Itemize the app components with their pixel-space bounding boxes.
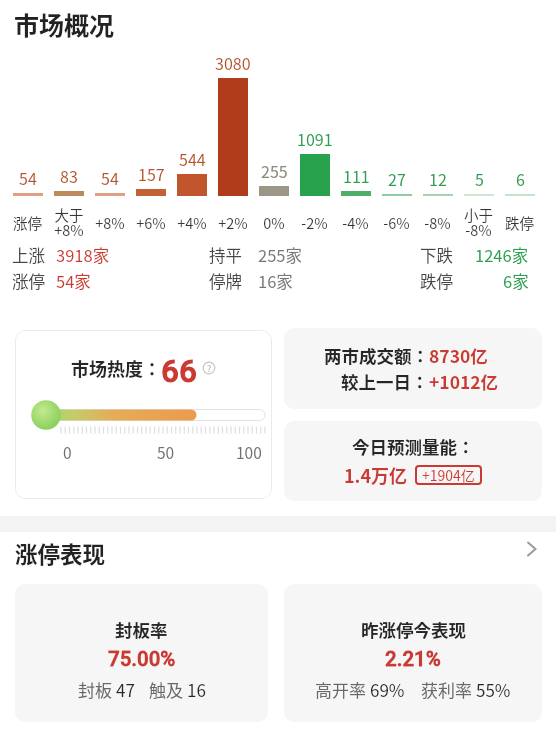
staticText: ? xyxy=(207,362,212,375)
staticText: 小于 -8% xyxy=(464,204,493,240)
staticText: 50 xyxy=(157,441,175,463)
staticText: 16家 xyxy=(258,269,293,293)
staticText: 55% xyxy=(476,677,511,702)
staticText: 下跌 xyxy=(420,243,453,267)
button[interactable]: 今日预测量能： xyxy=(284,421,542,501)
staticText: 昨涨停今表现 xyxy=(361,617,466,642)
staticText: 高开率 xyxy=(315,677,370,702)
staticText: 停牌 xyxy=(209,269,242,293)
staticText: 16 xyxy=(187,677,206,702)
staticText: +8% xyxy=(95,212,125,233)
button[interactable]: 两市成交额： xyxy=(284,328,542,409)
staticText: 跌停 xyxy=(505,212,534,233)
staticText: +4% xyxy=(177,212,207,233)
staticText: +2% xyxy=(218,212,248,233)
button[interactable]: 昨涨停今表现 xyxy=(284,584,542,722)
staticText: 6 xyxy=(516,167,525,190)
staticText: 1.4万亿 xyxy=(344,462,408,488)
staticText: 12 xyxy=(429,167,447,190)
staticText: 大于 +8% xyxy=(54,204,84,240)
staticText: 较上一日： xyxy=(341,369,429,394)
staticText: 0 xyxy=(63,441,72,463)
staticText: 3080 xyxy=(215,51,251,74)
staticText: 8730亿 xyxy=(429,343,488,368)
staticText: 市场热度： xyxy=(71,355,161,381)
staticText: 封板率 xyxy=(115,617,168,642)
staticText: 54 xyxy=(19,166,37,189)
staticText: 100 xyxy=(236,441,262,463)
staticText: -2% xyxy=(301,212,328,233)
staticText: 获利率 xyxy=(421,677,476,702)
staticText: -4% xyxy=(342,212,369,233)
staticText: +1904亿 xyxy=(422,465,475,485)
staticText: 47 xyxy=(116,677,135,702)
staticText: 5 xyxy=(475,167,484,190)
staticText: 1091 xyxy=(297,127,333,150)
staticText: 今日预测量能： xyxy=(352,434,475,459)
staticText: 544 xyxy=(179,147,206,170)
staticText: 255 xyxy=(261,159,288,182)
staticText: 跌停 xyxy=(420,269,453,293)
staticText: 75.00% xyxy=(108,647,176,671)
staticText: 两市成交额： xyxy=(324,343,429,368)
staticText: 255家 xyxy=(258,243,302,267)
staticText: 54家 xyxy=(56,269,91,293)
staticText: 69% xyxy=(370,677,405,702)
staticText: 54 xyxy=(101,166,119,189)
staticText: 111 xyxy=(343,164,370,187)
staticText: 市场概况 xyxy=(14,6,115,42)
staticText: 上涨 xyxy=(12,243,45,267)
button[interactable]: 市场热度： xyxy=(15,330,272,499)
staticText: 157 xyxy=(138,162,165,185)
staticText: +6% xyxy=(136,212,166,233)
staticText: 0% xyxy=(263,212,285,233)
staticText: 涨停 xyxy=(12,269,45,293)
button[interactable]: 涨停表现 xyxy=(0,535,556,571)
staticText: 1246家 xyxy=(475,243,529,267)
staticText: 封板 xyxy=(78,677,116,702)
staticText: 涨停 xyxy=(13,212,42,233)
staticText: 触及 xyxy=(149,677,187,702)
staticText: 2.21% xyxy=(385,647,441,671)
staticText: +1012亿 xyxy=(429,369,499,394)
staticText: 66 xyxy=(161,353,197,390)
staticText: -8% xyxy=(424,212,451,233)
staticText: 83 xyxy=(60,164,78,187)
staticText: -6% xyxy=(383,212,410,233)
staticText: 27 xyxy=(388,167,406,190)
staticText: 3918家 xyxy=(56,243,110,267)
staticText: 持平 xyxy=(209,243,242,267)
button[interactable]: 封板率 xyxy=(15,584,268,722)
staticText: 6家 xyxy=(503,269,529,293)
staticText: 涨停表现 xyxy=(15,537,106,570)
